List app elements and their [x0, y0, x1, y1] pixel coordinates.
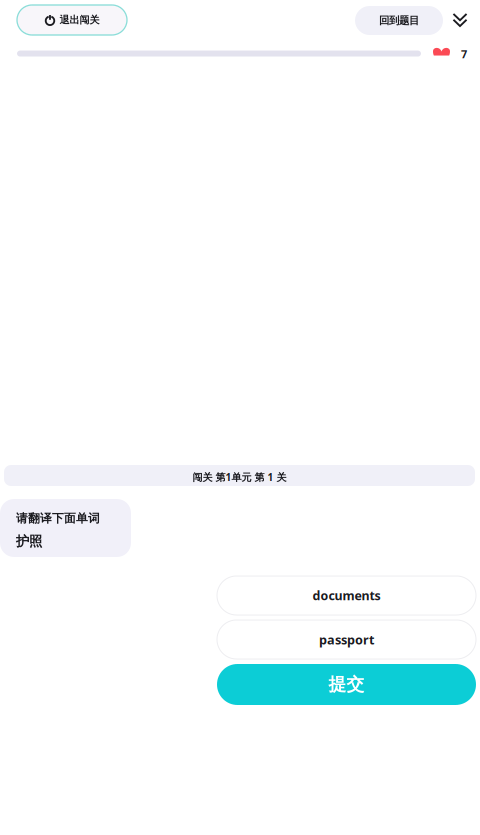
staticText: 回到题目	[379, 14, 419, 27]
button[interactable]: passport	[217, 620, 476, 659]
staticText: documents	[312, 587, 380, 604]
button[interactable]: 退出闯关	[17, 5, 127, 35]
button[interactable]: documents	[217, 576, 476, 615]
button[interactable]: 收起	[447, 5, 473, 35]
staticText: 护照	[16, 533, 42, 550]
staticText: 退出闯关	[59, 14, 99, 26]
staticText: 7	[461, 47, 467, 61]
staticText: passport	[319, 631, 374, 648]
staticText: 提交	[328, 673, 364, 696]
staticText: 闯关 第1单元 第 1 关	[192, 470, 286, 484]
staticText: 请翻译下面单词	[16, 511, 100, 526]
button[interactable]: 回到题目	[355, 6, 443, 35]
button[interactable]: 提交	[217, 664, 476, 705]
